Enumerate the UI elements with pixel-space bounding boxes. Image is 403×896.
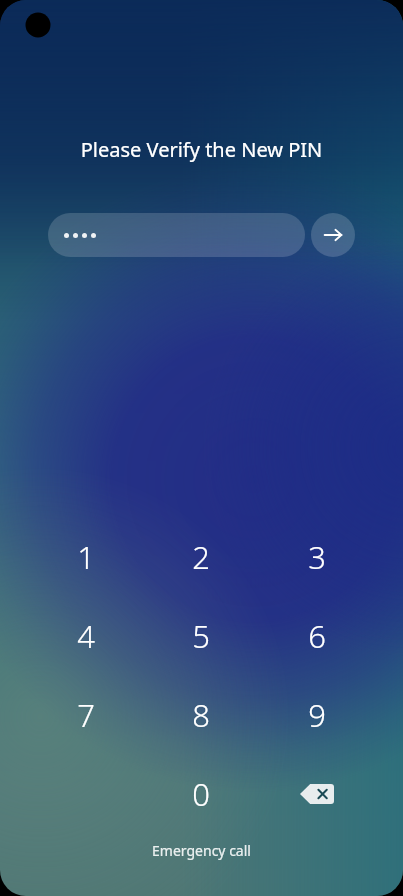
button[interactable]: Backspace [259,754,375,833]
staticText: 3 [308,536,326,578]
staticText: 2 [192,536,210,578]
button[interactable]: 2 [143,517,259,596]
staticText: Emergency call [152,841,251,860]
button[interactable]: Emergency call [136,835,267,866]
button[interactable]: 0 [143,754,259,833]
button[interactable]: 3 [259,517,375,596]
button[interactable]: 8 [143,675,259,754]
staticText: 5 [192,615,210,657]
staticText: 0 [192,773,210,815]
button[interactable]: Submit PIN [311,213,355,257]
staticText: Please Verify the New PIN [0,136,403,163]
staticText: 4 [77,615,95,657]
staticText: 7 [77,694,95,736]
button[interactable]: 9 [259,675,375,754]
staticText: 9 [308,694,326,736]
button[interactable]: 4 [28,596,143,675]
staticText: 1 [77,536,95,578]
staticText: 8 [192,694,210,736]
button[interactable]: 6 [259,596,375,675]
button[interactable]: 1 [28,517,143,596]
staticText: 6 [308,615,326,657]
button[interactable]: 5 [143,596,259,675]
button[interactable] [48,213,305,257]
button[interactable]: 7 [28,675,143,754]
